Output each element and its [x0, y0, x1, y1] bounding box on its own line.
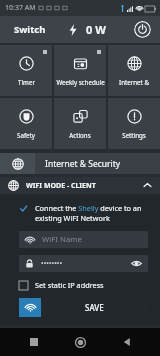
button[interactable]: Weekly schedule: [54, 45, 106, 96]
button[interactable]: SAVE: [19, 298, 148, 317]
staticText: Switch: [14, 23, 46, 36]
staticText: Weekly schedule: [56, 78, 105, 86]
button[interactable]: ••••••••: [19, 255, 148, 272]
button[interactable]: WiFI Name: [19, 231, 148, 248]
staticText: Internet & Security: [108, 78, 160, 86]
staticText: ••••••••: [41, 259, 63, 269]
staticText: Set static IP address: [35, 280, 104, 290]
button[interactable]: Safety: [0, 98, 52, 149]
staticText: 0 W: [86, 22, 106, 37]
button[interactable]: Internet & Security: [0, 153, 160, 174]
staticText: 10:37 AM: [5, 3, 36, 13]
button[interactable]: Actions: [54, 98, 106, 149]
staticText: Settings: [122, 131, 146, 139]
button[interactable]: Home: [67, 329, 93, 355]
button[interactable]: Recent apps: [21, 329, 47, 355]
staticText: SAVE: [85, 302, 104, 313]
staticText: Timer: [18, 78, 35, 86]
button[interactable]: Internet & Security: [108, 45, 160, 96]
button[interactable]: Connect the Shelly device to an existing…: [19, 203, 148, 223]
button[interactable]: Set static IP address: [19, 280, 104, 290]
staticText: Safety: [17, 131, 35, 139]
button[interactable]: Settings: [108, 98, 160, 149]
button[interactable]: Timer: [0, 45, 52, 96]
staticText: Internet & Security: [45, 158, 121, 170]
staticText: WIFI MODE - CLIENT: [26, 181, 96, 191]
staticText: WiFI Name: [42, 234, 82, 245]
button[interactable]: WIFI MODE - CLIENT: [0, 177, 160, 194]
staticText: Actions: [69, 131, 91, 139]
staticText: Connect the Shelly device to an existing…: [35, 203, 148, 223]
button[interactable]: Switch: [0, 16, 160, 43]
button[interactable]: Show password: [131, 258, 142, 269]
button[interactable]: Power toggle: [134, 21, 151, 38]
button[interactable]: Back: [114, 329, 140, 355]
